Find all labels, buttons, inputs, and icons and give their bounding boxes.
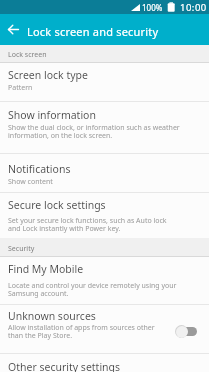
staticText: Notifications (8, 162, 71, 176)
staticText: Set your secure lock functions, such as … (8, 216, 167, 233)
staticText: 10:00 (180, 1, 207, 14)
button[interactable]: Secure lock settings (0, 193, 209, 238)
staticText: Show information (8, 108, 96, 122)
button[interactable]: Notifications (0, 154, 209, 192)
button[interactable]: Other security settings (0, 354, 209, 372)
button[interactable]: Find My Mobile (0, 257, 209, 304)
staticText: Secure lock settings (8, 198, 106, 212)
staticText: Locate and control your device remotely … (8, 281, 177, 298)
button[interactable]: Unknown sources (0, 305, 209, 352)
staticText: Unknown sources (8, 309, 96, 323)
button[interactable]: Screen lock type (0, 63, 209, 101)
button[interactable] (4, 20, 23, 39)
staticText: Show the dual clock, or information such… (8, 123, 180, 140)
staticText: Pattern (8, 83, 33, 93)
button[interactable] (175, 324, 197, 339)
staticText: Security (8, 244, 35, 254)
staticText: Lock screen and security (27, 24, 159, 39)
staticText: Screen lock type (8, 68, 88, 82)
staticText: Find My Mobile (8, 262, 84, 276)
staticText: Allow installation of apps from sources … (8, 323, 155, 340)
button[interactable]: Show information (0, 102, 209, 153)
staticText: Show content (8, 177, 53, 187)
staticText: Other security settings (8, 360, 121, 372)
staticText: Lock screen (8, 50, 47, 60)
staticText: 100% (142, 2, 163, 13)
